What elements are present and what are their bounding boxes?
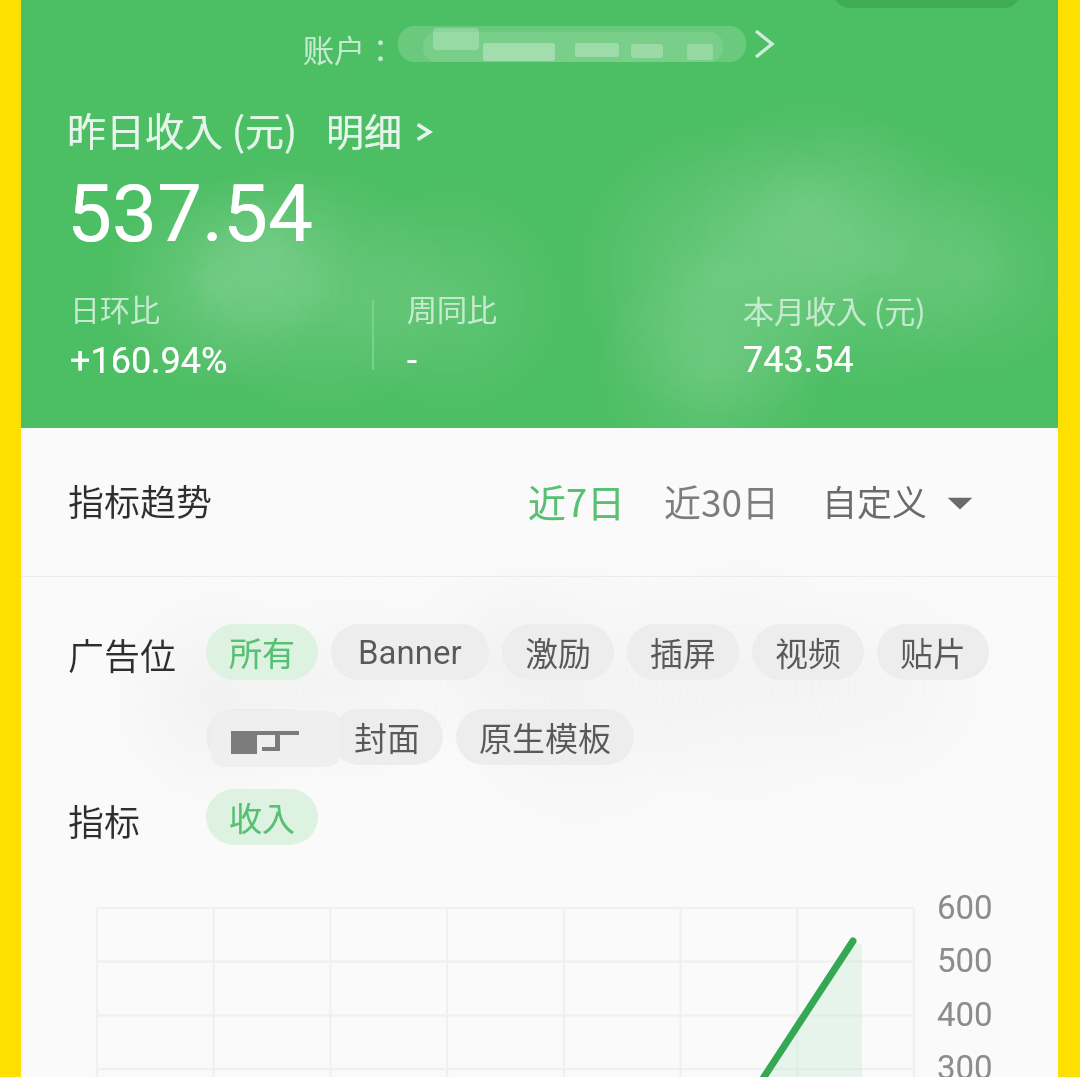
button[interactable]: Account detail xyxy=(303,18,823,70)
staticText: 周同比 xyxy=(407,286,497,329)
staticText: 500 xyxy=(937,941,993,980)
staticText: 激励 xyxy=(525,628,591,676)
button[interactable]: 昨日收入 (元) xyxy=(67,101,441,157)
staticText: +160.94% xyxy=(70,340,228,382)
staticText: 743.54 xyxy=(743,339,854,381)
staticText: 日环比 xyxy=(70,286,160,329)
staticText: 收入 xyxy=(229,793,295,841)
button[interactable]: 激励 xyxy=(502,624,614,680)
staticText: 600 xyxy=(937,888,993,927)
staticText: 插屏 xyxy=(650,628,716,676)
staticText: 贴片 xyxy=(900,628,966,676)
button[interactable]: Banner xyxy=(331,624,489,680)
button[interactable]: 自定义 xyxy=(822,475,974,526)
staticText: - xyxy=(407,340,417,382)
staticText: Banner xyxy=(358,633,462,672)
button[interactable]: 收入 xyxy=(206,789,318,845)
staticText: 指标 xyxy=(68,794,141,846)
staticText: 视频 xyxy=(775,628,841,676)
staticText: 537.54 xyxy=(67,167,313,261)
staticText: 300 xyxy=(937,1048,993,1077)
button[interactable]: 视频 xyxy=(752,624,864,680)
staticText: 账户： xyxy=(303,26,396,71)
staticText: 所有 xyxy=(229,628,295,676)
staticText: 原生模板 xyxy=(479,713,611,761)
button[interactable]: 近30日 xyxy=(664,474,780,528)
button[interactable]: 原生模板 xyxy=(456,709,634,765)
staticText: 指标趋势 xyxy=(68,474,213,526)
button[interactable]: 封面 xyxy=(331,709,443,765)
staticText: 开屏 xyxy=(229,713,295,761)
staticText: 昨日收入 (元) xyxy=(67,101,298,157)
button[interactable]: 近7日 xyxy=(528,473,626,528)
button[interactable]: 所有 xyxy=(206,624,318,680)
staticText: 自定义 xyxy=(822,475,928,526)
staticText: 明细 xyxy=(326,102,403,157)
button[interactable]: 贴片 xyxy=(877,624,989,680)
staticText: 广告位 xyxy=(68,628,177,680)
staticText: 400 xyxy=(937,995,993,1034)
staticText: 封面 xyxy=(354,713,420,761)
button[interactable]: 插屏 xyxy=(627,624,739,680)
button[interactable]: 开屏 xyxy=(206,709,318,765)
staticText: 本月收入 (元) xyxy=(743,287,926,332)
